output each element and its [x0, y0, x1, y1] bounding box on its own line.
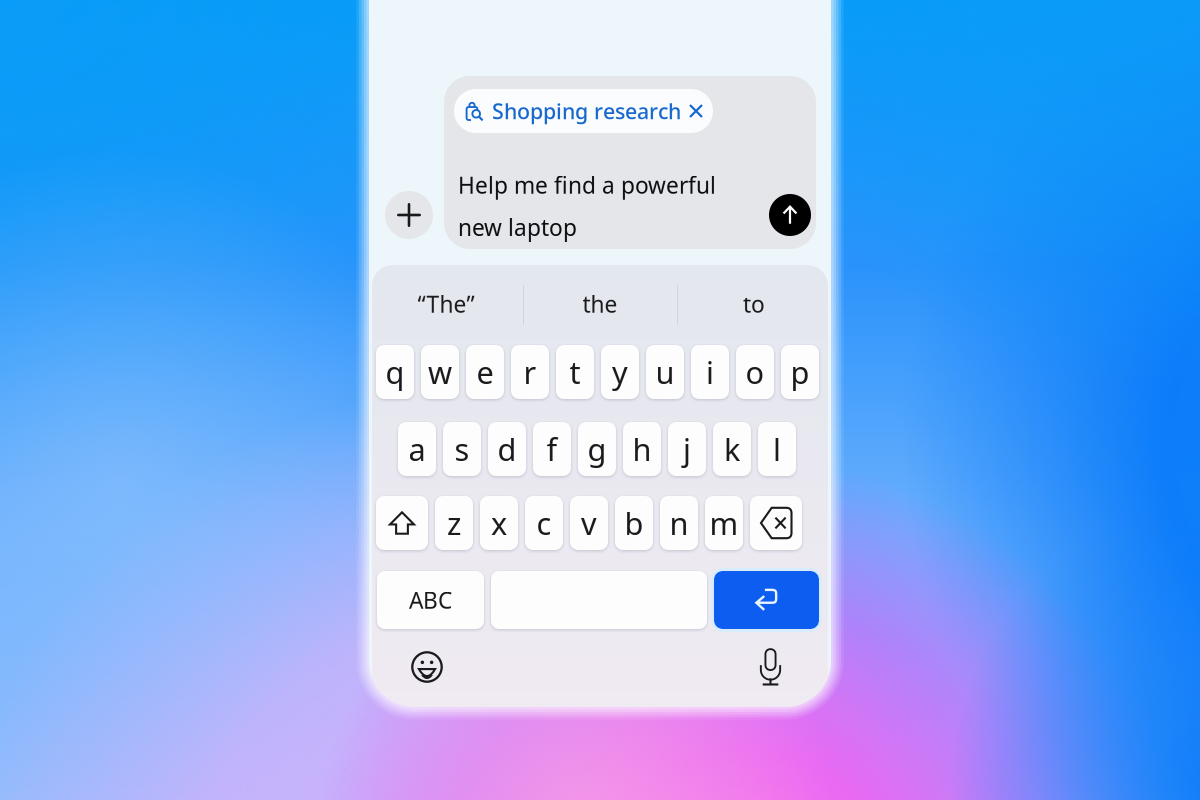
- staticText: c: [536, 503, 551, 543]
- button[interactable]: the: [523, 265, 677, 343]
- button[interactable]: b: [615, 496, 653, 550]
- staticText: “The”: [417, 289, 474, 319]
- staticText: b: [624, 503, 643, 543]
- staticText: p: [790, 352, 809, 392]
- button[interactable]: a: [398, 422, 436, 476]
- button[interactable]: Add attachment: [385, 191, 433, 239]
- staticText: w: [428, 352, 452, 392]
- button[interactable]: e: [466, 345, 504, 399]
- button[interactable]: t: [556, 345, 594, 399]
- staticText: f: [546, 429, 557, 469]
- button[interactable]: l: [758, 422, 796, 476]
- button[interactable]: Emoji: [411, 651, 443, 683]
- staticText: x: [491, 503, 507, 543]
- staticText: y: [612, 352, 628, 392]
- staticText: Help me find a powerful new laptop: [458, 170, 716, 242]
- button[interactable]: Send: [769, 194, 811, 236]
- button[interactable]: c: [525, 496, 563, 550]
- button[interactable]: y: [601, 345, 639, 399]
- button[interactable]: to: [677, 265, 831, 343]
- button[interactable]: k: [713, 422, 751, 476]
- button[interactable]: i: [691, 345, 729, 399]
- button[interactable]: v: [570, 496, 608, 550]
- button[interactable]: Shift: [376, 496, 428, 550]
- button[interactable]: m: [705, 496, 743, 550]
- button[interactable]: Return: [714, 571, 819, 629]
- staticText: k: [724, 429, 740, 469]
- staticText: q: [385, 352, 404, 392]
- staticText: j: [683, 429, 691, 469]
- button[interactable]: z: [435, 496, 473, 550]
- staticText: n: [669, 503, 688, 543]
- button[interactable]: s: [443, 422, 481, 476]
- button[interactable]: ABC: [377, 571, 484, 629]
- button[interactable]: n: [660, 496, 698, 550]
- staticText: u: [655, 352, 674, 392]
- staticText: the: [582, 289, 617, 319]
- button[interactable]: “The”: [369, 265, 523, 343]
- staticText: to: [743, 289, 765, 319]
- staticText: m: [709, 503, 738, 543]
- button[interactable]: w: [421, 345, 459, 399]
- button[interactable]: x: [480, 496, 518, 550]
- staticText: i: [706, 352, 714, 392]
- button[interactable]: Shopping research: [454, 89, 713, 133]
- staticText: v: [581, 503, 597, 543]
- staticText: l: [773, 429, 781, 469]
- button[interactable]: o: [736, 345, 774, 399]
- button[interactable]: g: [578, 422, 616, 476]
- staticText: h: [632, 429, 651, 469]
- staticText: z: [447, 503, 461, 543]
- staticText: t: [569, 352, 580, 392]
- button[interactable]: Delete: [750, 496, 802, 550]
- staticText: o: [745, 352, 764, 392]
- button[interactable]: d: [488, 422, 526, 476]
- staticText: ABC: [409, 585, 452, 615]
- staticText: g: [587, 429, 606, 469]
- button[interactable]: u: [646, 345, 684, 399]
- staticText: Shopping research: [492, 97, 681, 125]
- button[interactable]: f: [533, 422, 571, 476]
- button[interactable]: Dictate: [759, 648, 782, 686]
- button[interactable]: q: [376, 345, 414, 399]
- button[interactable]: p: [781, 345, 819, 399]
- staticText: d: [497, 429, 516, 469]
- staticText: e: [476, 352, 493, 392]
- button[interactable]: h: [623, 422, 661, 476]
- button[interactable]: r: [511, 345, 549, 399]
- staticText: r: [523, 352, 536, 392]
- button[interactable]: j: [668, 422, 706, 476]
- staticText: s: [454, 429, 469, 469]
- staticText: a: [408, 429, 425, 469]
